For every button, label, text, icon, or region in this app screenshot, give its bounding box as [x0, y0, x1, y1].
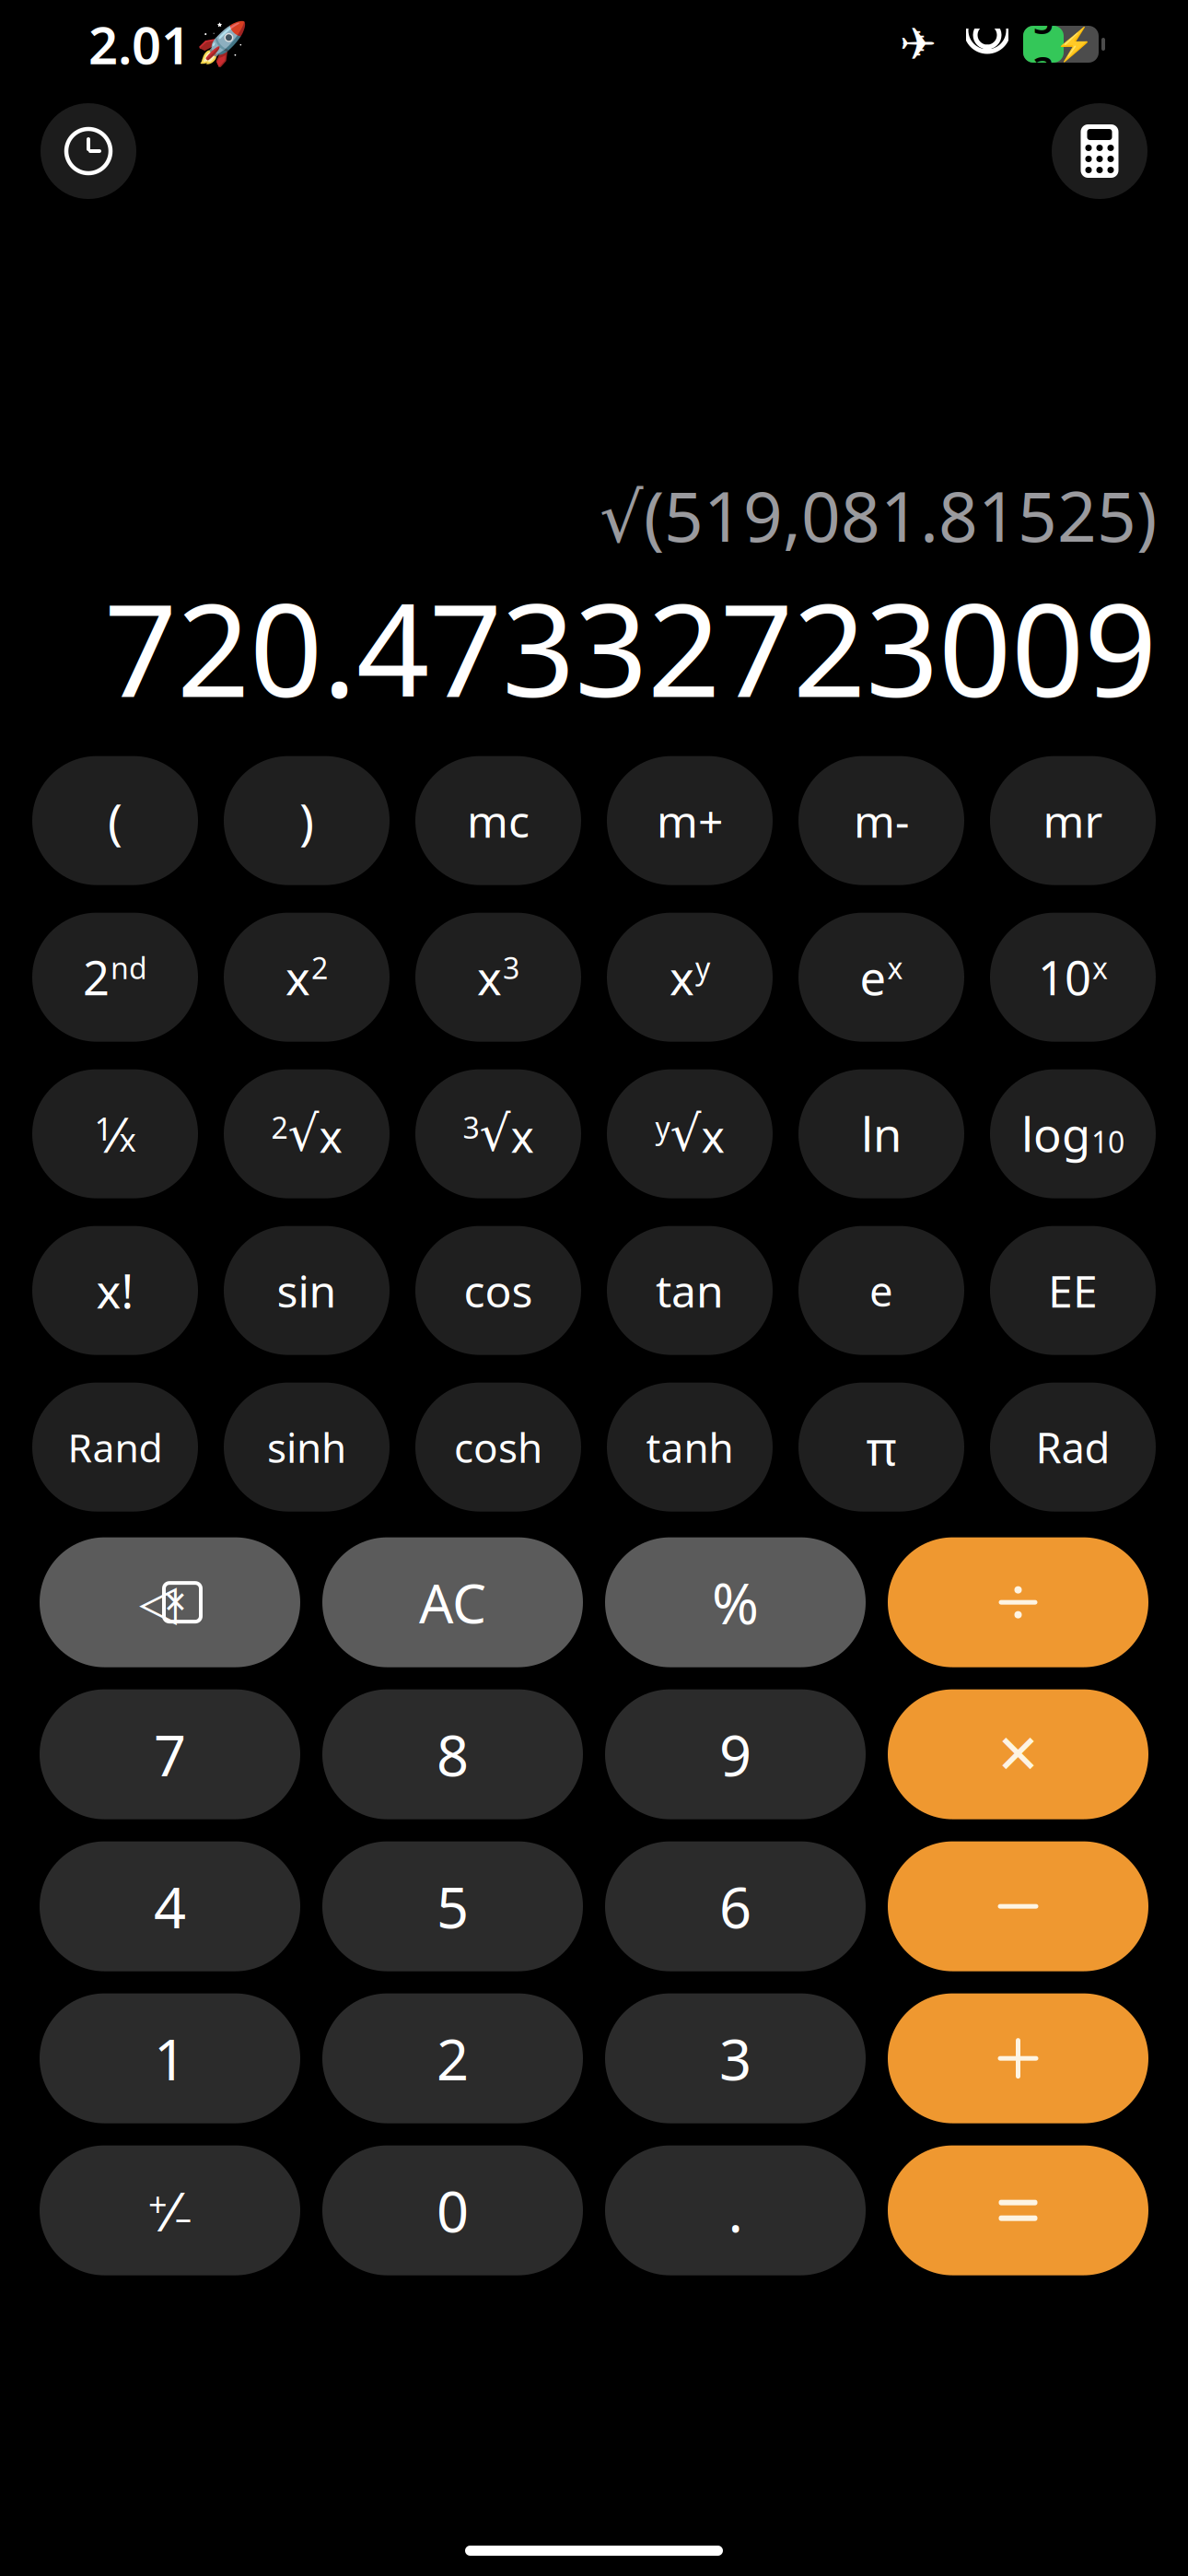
- button[interactable]: e: [798, 1226, 964, 1355]
- button[interactable]: Add: [888, 1993, 1148, 2123]
- staticText: π: [866, 1416, 897, 1478]
- button[interactable]: ): [224, 756, 390, 885]
- button[interactable]: (: [32, 756, 198, 885]
- button[interactable]: sinh: [224, 1383, 390, 1512]
- staticText: 2: [271, 1108, 288, 1147]
- button[interactable]: Rad: [990, 1383, 1156, 1512]
- button[interactable]: 9: [605, 1689, 866, 1819]
- button[interactable]: Calculator Mode: [1052, 103, 1147, 199]
- staticText: ◁: [139, 1574, 177, 1630]
- button[interactable]: 5: [322, 1841, 583, 1971]
- staticText: nd: [111, 948, 147, 987]
- button[interactable]: tan: [607, 1226, 773, 1355]
- staticText: x!: [96, 1259, 134, 1321]
- staticText: 3: [463, 1108, 479, 1147]
- button[interactable]: Multiply: [888, 1689, 1148, 1819]
- staticText: e: [869, 1263, 893, 1318]
- button[interactable]: Plus Minus: [40, 2145, 300, 2275]
- staticText: x: [1092, 948, 1108, 987]
- button[interactable]: Subtract: [888, 1841, 1148, 1971]
- staticText: 3: [719, 2021, 751, 2096]
- button[interactable]: m-: [798, 756, 964, 885]
- button[interactable]: x cubed: [415, 913, 581, 1042]
- staticText: y: [695, 948, 710, 987]
- button[interactable]: cosh: [415, 1383, 581, 1512]
- staticText: x: [701, 1106, 724, 1165]
- staticText: 🚀: [196, 20, 248, 68]
- button[interactable]: x to the power of y: [607, 913, 773, 1042]
- button[interactable]: mr: [990, 756, 1156, 885]
- button[interactable]: %: [605, 1537, 866, 1667]
- staticText: x: [285, 946, 310, 1008]
- staticText: ⁄: [168, 2174, 175, 2246]
- staticText: ✕: [996, 1724, 1041, 1785]
- button[interactable]: History: [41, 103, 136, 199]
- button[interactable]: Equals: [888, 2145, 1148, 2275]
- button[interactable]: y-th root: [607, 1069, 773, 1198]
- button[interactable]: EE: [990, 1226, 1156, 1355]
- staticText: √: [670, 1106, 701, 1162]
- button[interactable]: x!: [32, 1226, 198, 1355]
- staticText: x: [887, 948, 903, 987]
- staticText: 2: [311, 948, 328, 987]
- staticText: 1: [154, 2021, 186, 2096]
- staticText: 53: [1033, 0, 1054, 93]
- staticText: 8: [437, 1717, 469, 1792]
- button[interactable]: Rand: [32, 1383, 198, 1512]
- button[interactable]: Divide: [888, 1537, 1148, 1667]
- staticText: 2: [83, 946, 110, 1008]
- staticText: tan: [656, 1261, 724, 1320]
- staticText: 9: [719, 1717, 751, 1792]
- staticText: x: [511, 1106, 534, 1165]
- staticText: sinh: [267, 1420, 346, 1474]
- staticText: ✈: [900, 19, 937, 69]
- staticText: 10: [1038, 946, 1091, 1008]
- staticText: e: [860, 946, 886, 1008]
- staticText: √(519,081.81525): [600, 469, 1157, 561]
- staticText: cosh: [454, 1420, 542, 1474]
- staticText: √: [479, 1106, 511, 1162]
- staticText: AC: [419, 1566, 486, 1638]
- button[interactable]: AC: [322, 1537, 583, 1667]
- staticText: x: [477, 946, 502, 1008]
- button[interactable]: 4: [40, 1841, 300, 1971]
- button[interactable]: 3: [605, 1993, 866, 2123]
- button[interactable]: Delete: [40, 1537, 300, 1667]
- button[interactable]: square root: [224, 1069, 390, 1198]
- button[interactable]: 0: [322, 2145, 583, 2275]
- staticText: ⚡: [1054, 26, 1094, 62]
- staticText: %: [712, 1565, 759, 1640]
- button[interactable]: 6: [605, 1841, 866, 1971]
- button[interactable]: tanh: [607, 1383, 773, 1512]
- button[interactable]: 8: [322, 1689, 583, 1819]
- button[interactable]: x squared: [224, 913, 390, 1042]
- staticText: 7: [154, 1717, 186, 1792]
- button[interactable]: ln: [798, 1069, 964, 1198]
- button[interactable]: mc: [415, 756, 581, 885]
- staticText: 10: [1091, 1122, 1124, 1161]
- staticText: 0: [437, 2173, 469, 2248]
- button[interactable]: .: [605, 2145, 866, 2275]
- button[interactable]: 2nd: [32, 913, 198, 1042]
- staticText: tanh: [646, 1420, 734, 1474]
- button[interactable]: 2: [322, 1993, 583, 2123]
- button[interactable]: m+: [607, 756, 773, 885]
- staticText: Rand: [68, 1421, 163, 1473]
- button[interactable]: one divided by x: [32, 1069, 198, 1198]
- staticText: mc: [467, 791, 530, 850]
- staticText: 2: [437, 2021, 469, 2096]
- button[interactable]: 10 to the power of x: [990, 913, 1156, 1042]
- staticText: 4: [154, 1869, 186, 1944]
- button[interactable]: cube root: [415, 1069, 581, 1198]
- button[interactable]: log base 10: [990, 1069, 1156, 1198]
- button[interactable]: cos: [415, 1226, 581, 1355]
- button[interactable]: sin: [224, 1226, 390, 1355]
- button[interactable]: e to the power of x: [798, 913, 964, 1042]
- button[interactable]: 1: [40, 1993, 300, 2123]
- staticText: log: [1021, 1103, 1090, 1165]
- staticText: x: [119, 1118, 136, 1160]
- staticText: ⁄: [113, 1101, 119, 1166]
- staticText: 5: [437, 1869, 469, 1944]
- button[interactable]: π: [798, 1383, 964, 1512]
- button[interactable]: 7: [40, 1689, 300, 1819]
